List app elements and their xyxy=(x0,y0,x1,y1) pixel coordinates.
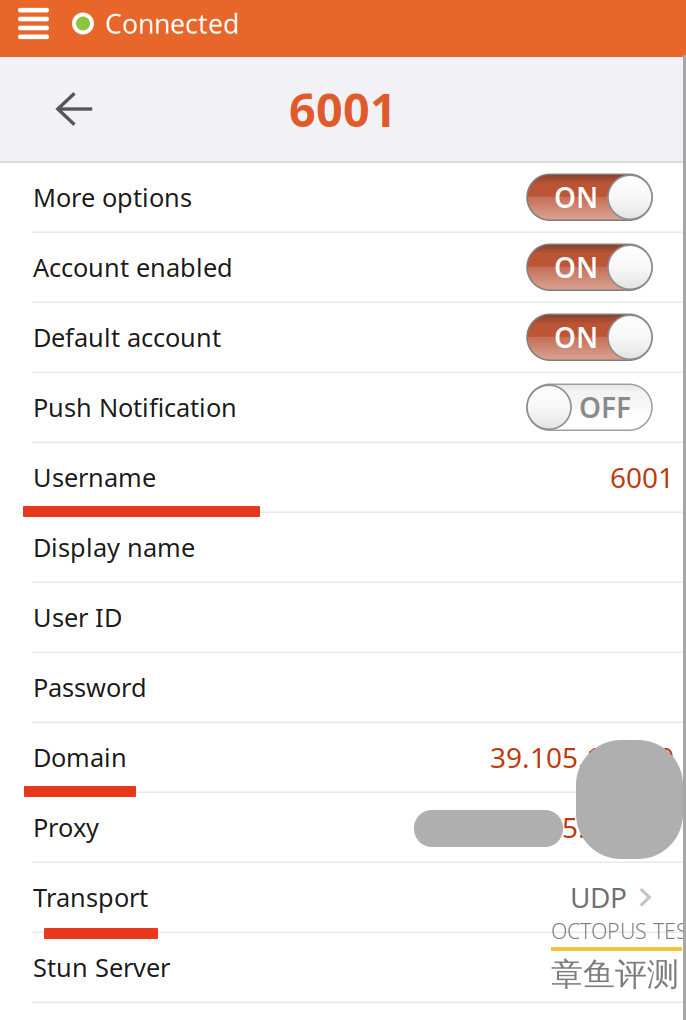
staticText: Proxy xyxy=(33,810,99,844)
staticText: Push Notification xyxy=(33,390,237,424)
staticText: Account enabled xyxy=(33,250,233,284)
button[interactable]: Transport xyxy=(0,863,686,931)
staticText: ON xyxy=(554,249,598,286)
staticText: 39.105.148.83 xyxy=(490,809,674,846)
staticText: Connected xyxy=(105,6,239,41)
button[interactable]: Menu xyxy=(0,0,72,47)
staticText: ON xyxy=(554,179,598,216)
staticText: OCTOPUS TEST xyxy=(551,917,686,945)
staticText: Stun Server xyxy=(33,950,170,984)
staticText: Display name xyxy=(33,530,195,564)
staticText: ON xyxy=(554,319,598,356)
staticText: 章鱼评测 xyxy=(551,955,679,994)
staticText: More options xyxy=(33,180,192,214)
button[interactable]: Username xyxy=(0,443,686,511)
staticText: 6001 xyxy=(289,78,397,140)
staticText: 6001 xyxy=(610,459,674,496)
staticText: Password xyxy=(33,670,147,704)
staticText: Domain xyxy=(33,740,127,774)
button[interactable]: Password xyxy=(0,653,686,721)
button[interactable]: Domain xyxy=(0,723,686,791)
staticText: OFF xyxy=(579,389,631,426)
button[interactable]: Back xyxy=(0,57,118,161)
button[interactable]: Stun Server xyxy=(0,933,686,1001)
button[interactable]: Default account xyxy=(0,303,686,371)
staticText: 39.105.148.29 xyxy=(490,739,674,776)
staticText: UDP xyxy=(570,879,627,916)
button[interactable]: Display name xyxy=(0,513,686,581)
button[interactable]: User ID xyxy=(0,583,686,651)
staticText: Transport xyxy=(33,880,148,914)
button[interactable]: More options xyxy=(0,163,686,231)
staticText: Default account xyxy=(33,320,221,354)
button[interactable]: Account enabled xyxy=(0,233,686,301)
staticText: Username xyxy=(33,460,156,494)
button[interactable]: Push Notification xyxy=(0,373,686,441)
button[interactable]: Proxy xyxy=(0,793,686,861)
staticText: User ID xyxy=(33,600,122,634)
